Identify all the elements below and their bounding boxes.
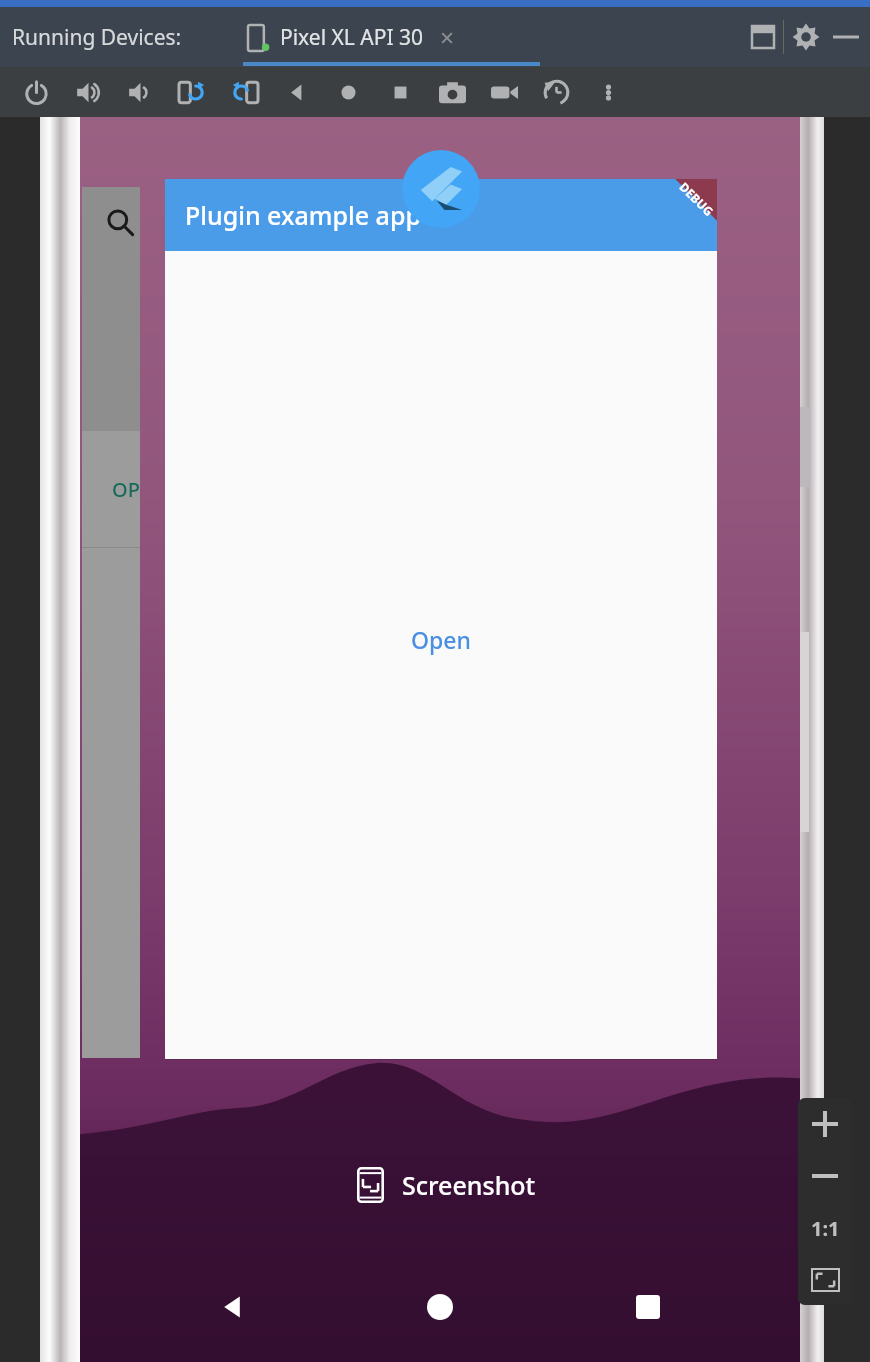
- button[interactable]: Record screen: [478, 67, 530, 117]
- button[interactable]: Back: [202, 1277, 262, 1337]
- staticText: Screenshot: [402, 1168, 536, 1202]
- button[interactable]: Fit to screen: [798, 1254, 852, 1305]
- staticText: Running Devices:: [12, 23, 182, 52]
- button[interactable]: Close tab: [436, 27, 458, 49]
- button[interactable]: Volume up: [62, 67, 114, 117]
- button[interactable]: Volume down: [114, 67, 166, 117]
- button[interactable]: Take screenshot: [426, 67, 478, 117]
- staticText: Plugin example app: [185, 198, 421, 232]
- button[interactable]: Pixel XL API 30: [248, 23, 458, 52]
- button[interactable]: Home: [322, 67, 374, 117]
- button[interactable]: Zoom out: [798, 1150, 852, 1202]
- button[interactable]: Home: [410, 1277, 470, 1337]
- button[interactable]: Flutter: [402, 150, 480, 228]
- button[interactable]: Rotate right: [218, 67, 270, 117]
- staticText: Open: [411, 624, 471, 655]
- button[interactable]: Overview: [374, 67, 426, 117]
- button[interactable]: Open: [403, 616, 479, 663]
- button[interactable]: Rotate left: [166, 67, 218, 117]
- button[interactable]: 1:1: [798, 1202, 852, 1254]
- button[interactable]: Minimize: [828, 19, 864, 55]
- button[interactable]: Screenshot: [357, 1167, 536, 1203]
- staticText: OP: [112, 476, 140, 503]
- button[interactable]: Extended controls: [530, 67, 582, 117]
- button[interactable]: Recent apps: [618, 1277, 678, 1337]
- staticText: 1:1: [811, 1215, 840, 1242]
- button[interactable]: Back: [270, 67, 322, 117]
- button[interactable]: Zoom in: [798, 1098, 852, 1150]
- button[interactable]: More: [582, 67, 634, 117]
- button[interactable]: Window layout: [743, 17, 783, 57]
- button[interactable]: Power: [10, 67, 62, 117]
- button[interactable]: Settings: [784, 15, 828, 59]
- staticText: DEBUG: [676, 178, 717, 219]
- staticText: Pixel XL API 30: [280, 23, 424, 52]
